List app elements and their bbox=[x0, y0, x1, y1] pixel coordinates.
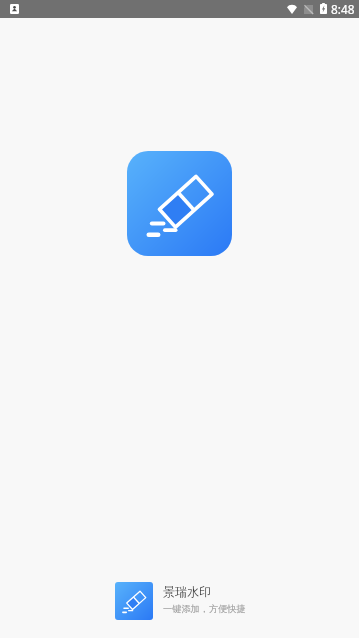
staticText: 8:48 bbox=[331, 1, 355, 17]
button[interactable]: 景瑞水印 bbox=[115, 582, 263, 620]
staticText: 景瑞水印 bbox=[163, 584, 211, 599]
staticText: 一键添加，方便快捷 bbox=[163, 603, 246, 615]
